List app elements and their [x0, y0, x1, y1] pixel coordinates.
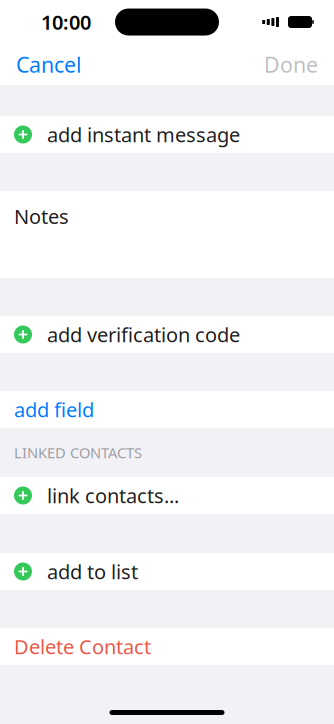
staticText: 10:00 — [41, 9, 91, 35]
staticText: Cancel — [16, 50, 82, 79]
staticText: link contacts... — [47, 482, 179, 509]
staticText: Notes — [14, 203, 69, 230]
staticText: Done — [264, 50, 318, 79]
staticText: add instant message — [47, 121, 240, 148]
staticText: LINKED CONTACTS — [14, 443, 142, 462]
staticText: add verification code — [47, 321, 240, 348]
button[interactable]: Delete Contact — [0, 628, 334, 665]
staticText: add to list — [47, 558, 138, 585]
button[interactable]: link contacts... — [0, 477, 334, 514]
button[interactable]: add field — [0, 391, 334, 428]
button[interactable]: add instant message — [0, 116, 334, 153]
button[interactable]: add to list — [0, 553, 334, 590]
button[interactable]: add verification code — [0, 316, 334, 353]
button[interactable]: Cancel — [0, 42, 82, 87]
button[interactable]: Done — [264, 42, 334, 87]
staticText: add field — [14, 396, 94, 423]
staticText: Delete Contact — [14, 633, 151, 660]
